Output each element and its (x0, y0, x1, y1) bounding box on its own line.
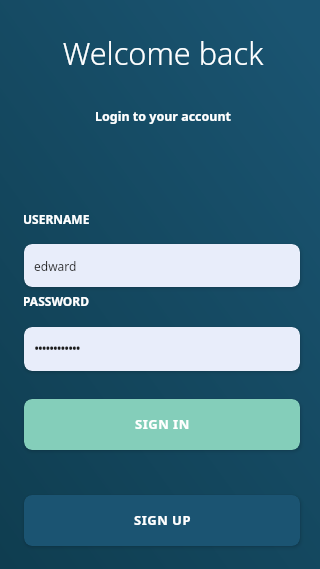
staticText: Welcome back (3, 32, 320, 74)
staticText: USERNAME (23, 211, 90, 227)
staticText: SIGN IN (135, 415, 190, 433)
staticText: SIGN UP (134, 511, 191, 529)
button[interactable]: Username (24, 244, 300, 287)
button[interactable]: SIGN UP (24, 495, 300, 546)
staticText: edward (34, 258, 77, 274)
staticText: Login to your account (3, 108, 320, 125)
staticText: PASSWORD (23, 293, 90, 309)
button[interactable]: SIGN IN (24, 399, 300, 450)
staticText: •••••••••••• (34, 339, 80, 358)
button[interactable]: Password (24, 327, 300, 371)
